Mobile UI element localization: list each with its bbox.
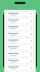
button[interactable]: List item: [6, 39, 34, 43]
button[interactable]: List item: [6, 32, 34, 36]
button[interactable]: List item: [6, 25, 34, 30]
button[interactable]: List item: [6, 45, 34, 50]
button[interactable]: List item: [6, 59, 34, 63]
button[interactable]: List item: [6, 18, 34, 23]
button[interactable]: List item: [6, 65, 34, 70]
button[interactable]: List item: [6, 12, 34, 16]
button[interactable]: List item: [6, 52, 34, 57]
